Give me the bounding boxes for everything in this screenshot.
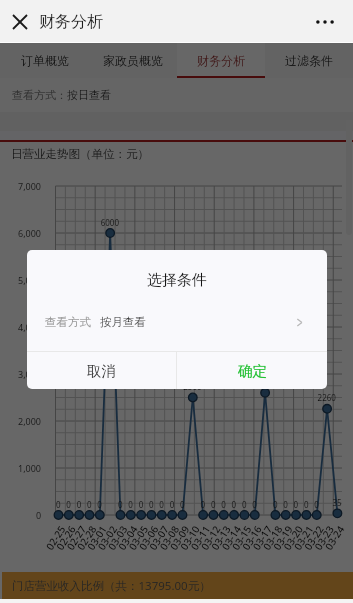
staticText: 财务分析 bbox=[197, 53, 245, 68]
staticText: 确定 bbox=[238, 362, 267, 380]
button[interactable]: Close bbox=[7, 9, 33, 35]
staticText: 家政员概览 bbox=[103, 53, 163, 68]
button[interactable]: 取消 bbox=[27, 352, 176, 389]
staticText: 日营业走势图（单位：元） bbox=[11, 147, 149, 161]
button[interactable]: 财务分析 bbox=[177, 43, 265, 78]
staticText: 选择条件 bbox=[147, 271, 207, 290]
staticText: 订单概览 bbox=[21, 53, 69, 68]
staticText: 按日查看 bbox=[67, 88, 111, 102]
button[interactable]: 查看方式： bbox=[0, 78, 353, 112]
staticText: 查看方式： bbox=[12, 88, 67, 102]
button[interactable]: 订单概览 bbox=[0, 43, 89, 78]
staticText: 查看方式 bbox=[45, 315, 91, 329]
staticText: 财务分析 bbox=[39, 12, 103, 32]
staticText: 门店营业收入比例（共：13795.00元） bbox=[12, 578, 211, 594]
button[interactable]: More options bbox=[311, 8, 339, 36]
staticText: 过滤条件 bbox=[285, 53, 333, 68]
button[interactable]: 家政员概览 bbox=[89, 43, 177, 78]
button[interactable]: 过滤条件 bbox=[265, 43, 353, 78]
button[interactable]: 查看方式 bbox=[27, 302, 327, 351]
button[interactable]: 确定 bbox=[177, 352, 327, 389]
staticText: 按月查看 bbox=[100, 315, 146, 329]
staticText: 取消 bbox=[87, 362, 116, 380]
